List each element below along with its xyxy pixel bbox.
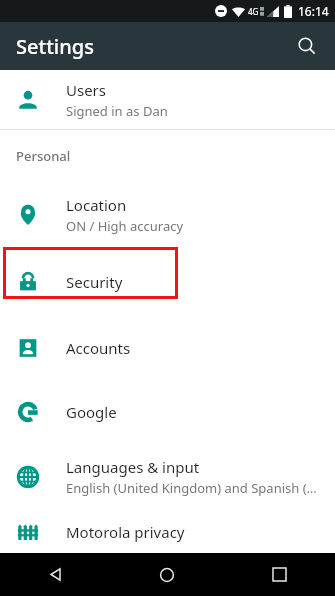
button[interactable]: Back xyxy=(0,553,111,596)
staticText: Security xyxy=(66,272,123,292)
staticText: 16:14 xyxy=(298,3,329,19)
staticText: Settings xyxy=(16,33,94,60)
staticText: Users xyxy=(66,80,106,100)
button[interactable]: Home xyxy=(111,553,223,596)
staticText: Personal xyxy=(16,147,71,165)
button[interactable]: Languages & input xyxy=(0,444,335,510)
button[interactable]: Motorola privacy xyxy=(0,510,335,553)
staticText: Motorola privacy xyxy=(66,522,185,542)
staticText: English (United Kingdom) and Spanish (M… xyxy=(66,479,319,497)
staticText: Languages & input xyxy=(66,457,200,477)
staticText: Google xyxy=(66,402,117,422)
button[interactable]: Google xyxy=(0,380,335,444)
button[interactable]: Accounts xyxy=(0,315,335,380)
staticText: Signed in as Dan xyxy=(66,102,168,120)
button[interactable]: Users xyxy=(0,70,335,129)
staticText: ON / High accuracy xyxy=(66,217,184,235)
staticText: Location xyxy=(66,195,127,215)
button[interactable]: Location xyxy=(0,182,335,248)
staticText: Accounts xyxy=(66,338,131,358)
button[interactable]: Search xyxy=(287,26,327,66)
staticText: 4G xyxy=(248,6,259,17)
button[interactable]: Security xyxy=(0,248,335,315)
button[interactable]: Recent apps xyxy=(223,553,335,596)
